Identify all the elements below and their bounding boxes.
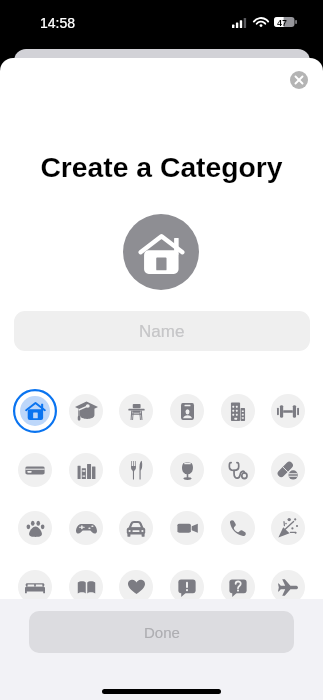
- button[interactable]: Books: [63, 447, 109, 493]
- button[interactable]: Reading: [63, 564, 109, 610]
- button[interactable]: Travel: [265, 564, 311, 610]
- button[interactable]: Finance: [12, 447, 58, 493]
- button[interactable]: Health: [215, 447, 261, 493]
- button[interactable]: Games: [63, 505, 109, 551]
- button[interactable]: Medicine: [265, 447, 311, 493]
- button[interactable]: Home: [12, 388, 58, 434]
- button[interactable]: Party: [265, 505, 311, 551]
- staticText: 47: [277, 18, 288, 28]
- button[interactable]: Education: [63, 388, 109, 434]
- button[interactable]: Name: [14, 311, 310, 351]
- staticText: Name: [139, 322, 185, 341]
- button[interactable]: Food: [113, 447, 159, 493]
- button[interactable]: Video: [164, 505, 210, 551]
- button[interactable]: Work badge: [164, 388, 210, 434]
- button[interactable]: Pets: [12, 505, 58, 551]
- staticText: Create a Category: [0, 151, 323, 183]
- button[interactable]: Done: [29, 611, 294, 653]
- button[interactable]: Office: [215, 388, 261, 434]
- button[interactable]: Questions: [215, 564, 261, 610]
- staticText: Done: [144, 624, 180, 641]
- staticText: 14:58: [40, 15, 76, 31]
- button[interactable]: Car: [113, 505, 159, 551]
- button[interactable]: School: [113, 388, 159, 434]
- button[interactable]: Favourites: [113, 564, 159, 610]
- button[interactable]: Fitness: [265, 388, 311, 434]
- button[interactable]: Calls: [215, 505, 261, 551]
- button[interactable]: Category icon: [123, 214, 199, 290]
- button[interactable]: Drinks: [164, 447, 210, 493]
- button[interactable]: Sleep: [12, 564, 58, 610]
- button[interactable]: Close: [290, 71, 308, 89]
- button[interactable]: Important: [164, 564, 210, 610]
